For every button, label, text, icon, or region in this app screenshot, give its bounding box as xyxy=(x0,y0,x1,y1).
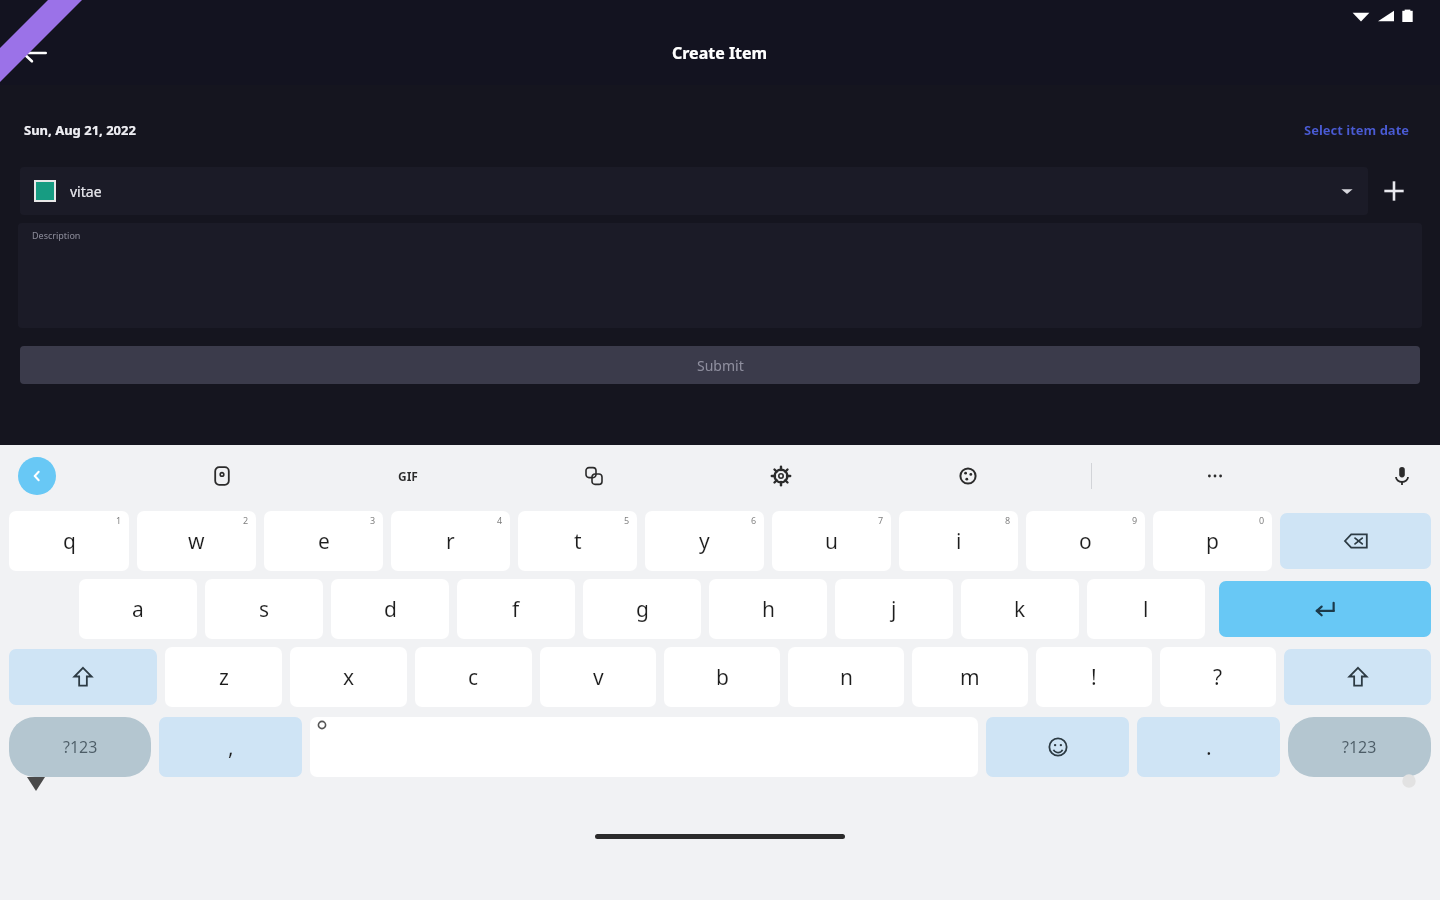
staticText: Sun, Aug 21, 2022 xyxy=(24,121,136,139)
button[interactable]: d xyxy=(331,579,449,639)
staticText: q xyxy=(63,527,76,556)
button[interactable]: ?123 xyxy=(1288,717,1431,777)
button[interactable]: Shift xyxy=(9,649,157,705)
button[interactable]: n xyxy=(788,647,904,707)
button[interactable]: Back xyxy=(10,29,58,77)
staticText: r xyxy=(446,527,455,556)
button[interactable]: Select item date xyxy=(1300,117,1414,143)
staticText: Select item date xyxy=(1304,121,1410,139)
button[interactable]: v xyxy=(540,647,656,707)
button[interactable]: l xyxy=(1087,579,1205,639)
button[interactable]: vitae xyxy=(20,167,1368,215)
staticText: . xyxy=(1206,733,1212,762)
button[interactable]: b xyxy=(664,647,780,707)
staticText: 0 xyxy=(1259,514,1265,526)
button[interactable]: k xyxy=(961,579,1079,639)
staticText: p xyxy=(1206,527,1219,556)
staticText: ! xyxy=(1091,663,1097,692)
staticText: y xyxy=(699,527,710,556)
button[interactable]: t xyxy=(518,511,637,571)
staticText: s xyxy=(259,595,270,624)
staticText: Create Item xyxy=(672,42,768,64)
button[interactable]: y xyxy=(645,511,764,571)
button[interactable]: Submit xyxy=(20,346,1420,384)
staticText: t xyxy=(574,527,582,556)
staticText: k xyxy=(1014,595,1026,624)
staticText: x xyxy=(343,663,355,692)
button[interactable]: e xyxy=(264,511,383,571)
staticText: ?123 xyxy=(1342,736,1377,758)
staticText: Description xyxy=(32,229,81,241)
staticText: c xyxy=(468,663,479,692)
staticText: f xyxy=(512,595,520,624)
staticText: 2 xyxy=(243,514,249,526)
button[interactable]: a xyxy=(79,579,197,639)
staticText: , xyxy=(228,733,234,762)
staticText: a xyxy=(132,595,144,624)
button[interactable]: Theme xyxy=(948,456,988,496)
staticText: j xyxy=(891,595,897,624)
button[interactable]: z xyxy=(165,647,282,707)
button[interactable]: s xyxy=(205,579,323,639)
staticText: l xyxy=(1143,595,1149,624)
button[interactable]: c xyxy=(415,647,532,707)
staticText: 5 xyxy=(624,514,630,526)
staticText: m xyxy=(960,663,980,692)
staticText: 3 xyxy=(370,514,376,526)
staticText: 1 xyxy=(116,514,122,526)
staticText: 7 xyxy=(878,514,884,526)
staticText: 9 xyxy=(1132,514,1138,526)
staticText: v xyxy=(593,663,604,692)
button[interactable]: Backspace xyxy=(1280,513,1431,569)
staticText: i xyxy=(956,527,962,556)
button[interactable]: w xyxy=(137,511,256,571)
staticText: ?123 xyxy=(63,736,98,758)
button[interactable]: Translate xyxy=(574,456,614,496)
staticText: 8 xyxy=(1005,514,1011,526)
button[interactable]: i xyxy=(899,511,1018,571)
button[interactable]: h xyxy=(709,579,827,639)
button[interactable]: , xyxy=(159,717,302,777)
staticText: vitae xyxy=(70,182,102,201)
staticText: n xyxy=(840,663,853,692)
button[interactable]: p xyxy=(1153,511,1272,571)
staticText: b xyxy=(716,663,729,692)
staticText: 4 xyxy=(497,514,503,526)
button[interactable]: r xyxy=(391,511,510,571)
button[interactable]: q xyxy=(9,511,129,571)
button[interactable]: o xyxy=(1026,511,1145,571)
button[interactable]: GIF xyxy=(389,457,427,495)
button[interactable]: Shift xyxy=(1284,649,1431,705)
staticText: z xyxy=(219,663,229,692)
button[interactable]: Stickers xyxy=(202,456,242,496)
button[interactable]: . xyxy=(1137,717,1280,777)
staticText: o xyxy=(1079,527,1092,556)
staticText: h xyxy=(762,595,775,624)
staticText: ? xyxy=(1213,663,1223,692)
button[interactable]: ! xyxy=(1036,647,1152,707)
staticText: u xyxy=(825,527,838,556)
staticText: g xyxy=(636,595,649,624)
button[interactable]: j xyxy=(835,579,953,639)
staticText: d xyxy=(384,595,397,624)
button[interactable]: Add xyxy=(1368,165,1420,217)
staticText: e xyxy=(318,527,330,556)
button[interactable]: Settings xyxy=(761,456,801,496)
button[interactable]: Emoji xyxy=(986,717,1129,777)
staticText: GIF xyxy=(398,468,418,484)
button[interactable]: u xyxy=(772,511,891,571)
button[interactable]: Expand xyxy=(18,457,56,495)
button[interactable]: Enter xyxy=(1219,581,1431,637)
button[interactable]: x xyxy=(290,647,407,707)
staticText: Submit xyxy=(697,356,744,375)
staticText: w xyxy=(188,527,205,556)
button[interactable]: f xyxy=(457,579,575,639)
button[interactable]: g xyxy=(583,579,701,639)
button[interactable]: Space xyxy=(310,717,978,777)
button[interactable]: ?123 xyxy=(9,717,151,777)
button[interactable]: ? xyxy=(1160,647,1276,707)
button[interactable]: m xyxy=(912,647,1028,707)
button[interactable]: More xyxy=(1195,456,1235,496)
button[interactable]: Voice input xyxy=(1382,456,1422,496)
